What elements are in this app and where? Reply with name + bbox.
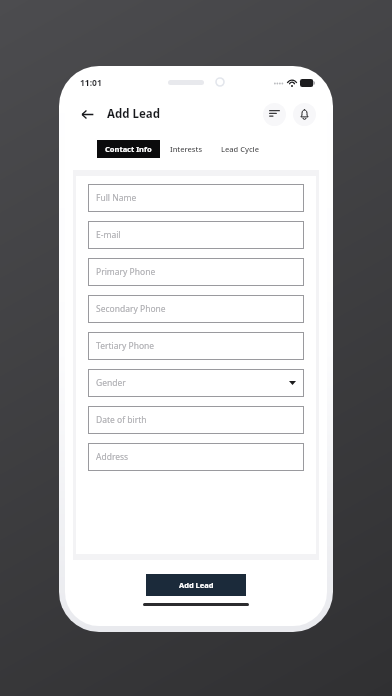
staticText: Gender xyxy=(96,377,126,389)
staticText: Address xyxy=(96,451,129,463)
button[interactable]: Back xyxy=(76,103,98,125)
button[interactable]: Add Lead xyxy=(146,574,246,596)
button[interactable]: Secondary Phone xyxy=(88,295,304,323)
staticText: Primary Phone xyxy=(96,266,156,278)
button[interactable]: Primary Phone xyxy=(88,258,304,286)
button[interactable]: Interests xyxy=(160,140,213,158)
staticText: Contact Info xyxy=(105,144,152,154)
button[interactable]: Contact Info xyxy=(97,140,160,158)
button[interactable]: Tertiary Phone xyxy=(88,332,304,360)
staticText: Date of birth xyxy=(96,414,147,426)
button[interactable]: E-mail xyxy=(88,221,304,249)
staticText: 11:01 xyxy=(80,77,102,89)
button[interactable]: Notifications xyxy=(293,103,316,126)
staticText: E-mail xyxy=(96,229,121,241)
staticText: Secondary Phone xyxy=(96,303,166,315)
button[interactable]: Sort xyxy=(263,103,286,126)
staticText: Interests xyxy=(170,144,203,154)
button[interactable]: Date of birth xyxy=(88,406,304,434)
button[interactable]: Gender xyxy=(88,369,304,397)
button[interactable]: Address xyxy=(88,443,304,471)
staticText: Add Lead xyxy=(179,580,214,590)
button[interactable]: Full Name xyxy=(88,184,304,212)
staticText: Full Name xyxy=(96,192,137,204)
staticText: Add Lead xyxy=(107,106,160,122)
staticText: Lead Cycle xyxy=(221,144,259,154)
button[interactable]: Lead Cycle xyxy=(213,140,267,158)
staticText: Tertiary Phone xyxy=(96,340,155,352)
